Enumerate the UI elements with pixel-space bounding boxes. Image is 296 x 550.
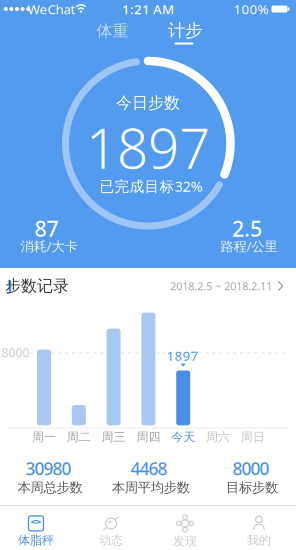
staticText: 今日步数: [116, 93, 180, 113]
staticText: WeChat: [27, 0, 75, 18]
staticText: 周二: [67, 430, 91, 444]
staticText: 今天: [171, 430, 195, 444]
button[interactable]: 2018.2.5 ~ 2018.2.11: [170, 279, 284, 293]
staticText: 周四: [136, 430, 160, 444]
staticText: 周日: [241, 430, 265, 444]
staticText: 1897: [86, 111, 210, 184]
staticText: 步数记录: [5, 276, 69, 296]
staticText: 路程/公里: [220, 237, 277, 255]
button[interactable]: 发现: [148, 510, 222, 550]
staticText: 已完成目标32%: [99, 176, 202, 196]
staticText: 计步: [168, 20, 202, 41]
staticText: 87: [34, 214, 58, 243]
staticText: 本周平均步数: [112, 479, 190, 496]
staticText: 发现: [173, 534, 197, 549]
staticText: 目标步数: [226, 479, 278, 496]
staticText: 周六: [206, 430, 230, 444]
staticText: 30980: [25, 457, 71, 480]
staticText: 体脂秤: [18, 533, 54, 548]
staticText: 2.5: [232, 214, 262, 243]
staticText: 1:21 AM: [122, 0, 174, 18]
button[interactable]: 计步: [168, 20, 202, 41]
staticText: 4468: [130, 457, 167, 480]
staticText: 1897: [166, 347, 198, 364]
staticText: 我的: [247, 533, 271, 548]
staticText: 100%: [233, 0, 268, 18]
button[interactable]: 动态: [74, 510, 148, 550]
staticText: 体重: [96, 21, 128, 41]
staticText: 8000: [1, 344, 29, 360]
button[interactable]: 我的: [222, 510, 296, 550]
staticText: 8000: [232, 457, 269, 480]
staticText: 周一: [32, 430, 56, 444]
staticText: 消耗/大卡: [20, 237, 77, 255]
staticText: 2018.2.5 ~ 2018.2.11: [170, 279, 272, 293]
button[interactable]: 体重: [96, 21, 128, 41]
staticText: 本周总步数: [17, 479, 82, 496]
staticText: 动态: [99, 533, 123, 548]
button[interactable]: 体脂秤: [0, 510, 73, 550]
staticText: 周三: [102, 430, 126, 444]
